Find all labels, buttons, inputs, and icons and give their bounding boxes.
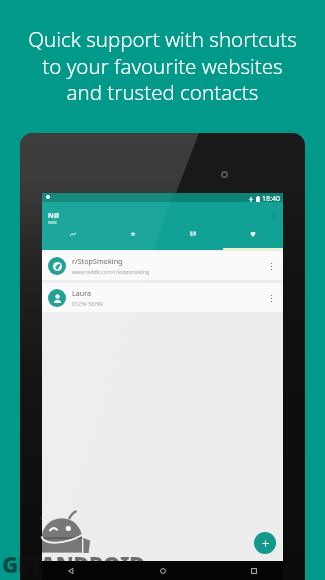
button[interactable]: Back [64,564,78,578]
staticText: GETANDROID [2,549,145,579]
staticText: www.reddit.com/r/stopsmoking [72,268,150,275]
staticText: 01234 56789 [72,300,104,307]
button[interactable]: Laura [42,283,283,312]
button[interactable]: Recent [42,231,103,237]
staticText: r/StopSmoking [72,256,123,266]
staticText: NØ [48,211,60,221]
button[interactable]: Contacts [163,231,223,237]
button[interactable]: Recents [247,564,261,578]
button[interactable]: r/StopSmoking [42,251,283,280]
staticText: Quick support with shortcuts to your fav… [28,25,297,106]
button[interactable]: Item options [264,291,278,305]
button[interactable]: Item options [264,259,278,273]
button[interactable]: More options [267,208,281,222]
button[interactable]: Home [156,564,170,578]
staticText: 18:40 [262,194,280,203]
button[interactable]: Favourites [223,231,283,237]
button[interactable]: Starred [103,231,163,237]
staticText: Laura [72,288,92,298]
staticText: MORE [48,221,57,225]
button[interactable]: Add shortcut [254,532,276,554]
